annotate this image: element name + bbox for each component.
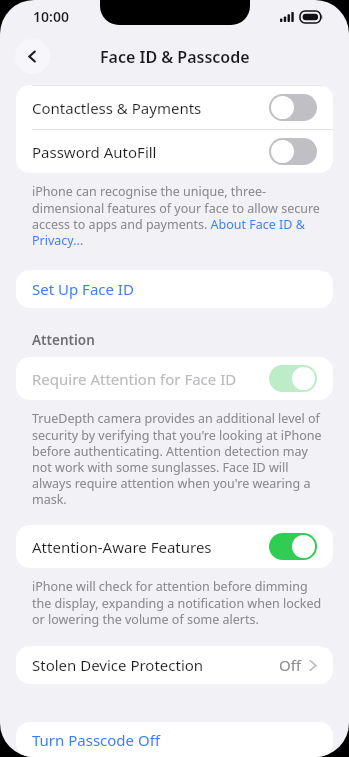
- staticText: Set Up Face ID: [32, 279, 134, 299]
- staticText: iPhone can recognise the unique, three-d…: [32, 183, 323, 248]
- staticText: Attention: [32, 331, 95, 349]
- staticText: Attention-Aware Features: [32, 537, 269, 557]
- button[interactable]: [269, 533, 317, 560]
- button[interactable]: Attention-Aware Features: [16, 525, 333, 568]
- staticText: Password AutoFill: [32, 142, 269, 162]
- staticText: Off: [279, 655, 302, 675]
- staticText: Require Attention for Face ID: [32, 369, 269, 389]
- staticText: Contactless & Payments: [32, 98, 269, 118]
- button[interactable]: [269, 138, 317, 165]
- button[interactable]: [269, 365, 317, 392]
- button[interactable]: Stolen Device Protection: [16, 646, 333, 684]
- button[interactable]: [269, 94, 317, 121]
- staticText: Turn Passcode Off: [32, 730, 160, 750]
- staticText: iPhone will check for attention before d…: [32, 578, 323, 627]
- button[interactable]: Password AutoFill: [16, 130, 333, 173]
- button[interactable]: Back: [15, 39, 50, 74]
- staticText: Face ID & Passcode: [100, 46, 250, 68]
- staticText: TrueDepth camera provides an additional …: [32, 410, 323, 507]
- button[interactable]: Contactless & Payments: [16, 86, 333, 129]
- button[interactable]: Require Attention for Face ID: [16, 357, 333, 400]
- staticText: 10:00: [33, 7, 69, 26]
- button[interactable]: Set Up Face ID: [16, 270, 333, 308]
- staticText: Stolen Device Protection: [32, 655, 279, 675]
- button[interactable]: Turn Passcode Off: [16, 722, 333, 757]
